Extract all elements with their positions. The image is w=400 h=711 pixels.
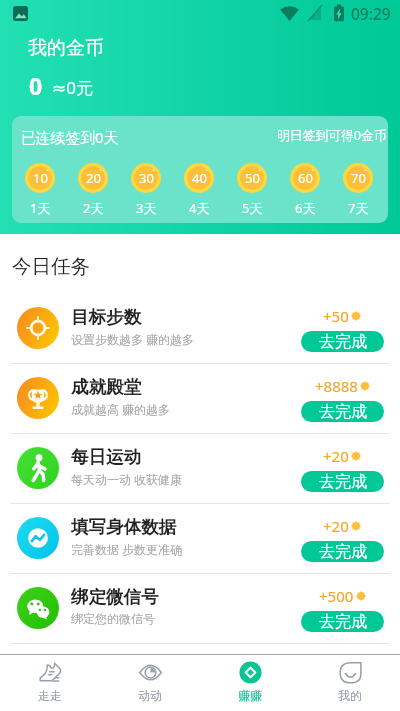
- button[interactable]: 去完成: [301, 541, 384, 562]
- staticText: +500: [319, 586, 354, 606]
- staticText: 动动: [138, 688, 162, 703]
- button[interactable]: 走走: [0, 655, 100, 711]
- staticText: 5天: [242, 199, 263, 217]
- staticText: 4天: [189, 199, 210, 217]
- staticText: 设置步数越多 赚的越多: [71, 331, 195, 347]
- staticText: 6天: [295, 199, 316, 217]
- button[interactable]: 成就殿堂: [0, 364, 400, 433]
- staticText: 50: [245, 169, 260, 187]
- staticText: +50: [323, 306, 349, 326]
- staticText: 每天动一动 收获健康: [71, 471, 183, 487]
- staticText: 去完成: [319, 612, 367, 632]
- staticText: 填写身体数据: [71, 516, 176, 538]
- staticText: 走走: [38, 688, 62, 703]
- staticText: 绑定微信号: [71, 586, 159, 608]
- staticText: 去完成: [319, 402, 367, 422]
- staticText: 20: [86, 169, 101, 187]
- button[interactable]: 每日运动: [0, 434, 400, 503]
- staticText: 去完成: [319, 332, 367, 352]
- staticText: 2天: [83, 199, 104, 217]
- staticText: 已连续签到0天: [21, 127, 119, 147]
- staticText: 目标步数: [71, 306, 141, 328]
- staticText: 成就越高 赚的越多: [71, 401, 171, 417]
- button[interactable]: 绑定微信号: [0, 574, 400, 643]
- button[interactable]: 填写身体数据: [0, 504, 400, 573]
- staticText: 去完成: [319, 472, 367, 492]
- staticText: 3天: [136, 199, 157, 217]
- staticText: 绑定您的微信号: [71, 611, 155, 626]
- button[interactable]: 动动: [100, 655, 200, 711]
- button[interactable]: 去完成: [301, 471, 384, 492]
- button[interactable]: 去完成: [301, 401, 384, 422]
- staticText: 1天: [30, 199, 51, 217]
- staticText: 我的: [338, 688, 362, 703]
- staticText: 我的金币: [28, 36, 104, 60]
- staticText: 赚赚: [238, 688, 262, 703]
- staticText: 今日任务: [12, 254, 90, 279]
- staticText: 40: [192, 169, 207, 187]
- staticText: 09:29: [351, 3, 391, 24]
- staticText: 30: [139, 169, 154, 187]
- staticText: 0: [29, 70, 43, 101]
- button[interactable]: 赚赚: [200, 655, 300, 711]
- staticText: 去完成: [319, 542, 367, 562]
- staticText: ≈0元: [52, 76, 93, 99]
- staticText: 10: [33, 169, 48, 187]
- staticText: 完善数据 步数更准确: [71, 541, 183, 557]
- staticText: 每日运动: [71, 446, 141, 468]
- staticText: 7天: [348, 199, 369, 217]
- staticText: +20: [323, 516, 349, 536]
- staticText: 70: [351, 169, 366, 187]
- staticText: +8888: [315, 376, 358, 396]
- staticText: 成就殿堂: [71, 376, 141, 398]
- staticText: 明日签到可得0金币: [277, 126, 387, 143]
- staticText: 60: [298, 169, 313, 187]
- staticText: +20: [323, 446, 349, 466]
- button[interactable]: 我的: [300, 655, 400, 711]
- button[interactable]: 去完成: [301, 611, 384, 632]
- button[interactable]: 目标步数: [0, 294, 400, 363]
- button[interactable]: 去完成: [301, 331, 384, 352]
